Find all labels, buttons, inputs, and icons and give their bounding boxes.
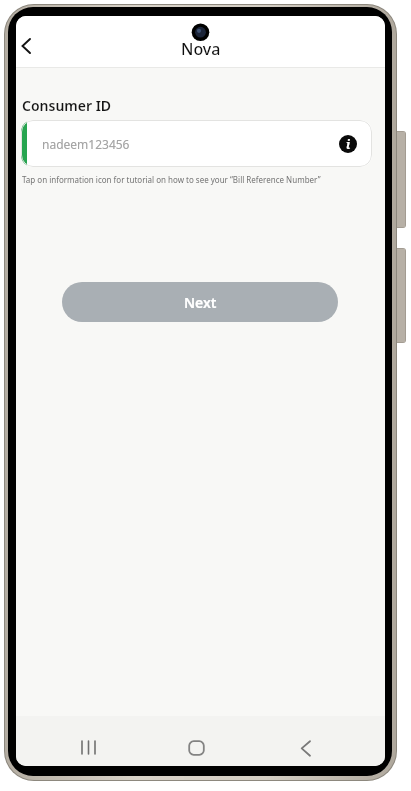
button[interactable] bbox=[294, 732, 325, 763]
staticText: Consumer ID bbox=[22, 96, 112, 115]
button[interactable]: i bbox=[339, 135, 357, 153]
staticText: Nova bbox=[181, 38, 221, 60]
staticText: nadeem123456 bbox=[42, 136, 130, 152]
staticText: i bbox=[346, 136, 351, 152]
button[interactable] bbox=[181, 732, 212, 763]
button[interactable] bbox=[72, 732, 105, 763]
staticText: Tap on information icon for tutorial on … bbox=[22, 174, 321, 185]
button[interactable] bbox=[16, 32, 46, 62]
staticText: Next bbox=[184, 293, 217, 312]
button[interactable]: Next bbox=[62, 282, 338, 322]
button[interactable]: nadeem123456 bbox=[21, 120, 372, 167]
